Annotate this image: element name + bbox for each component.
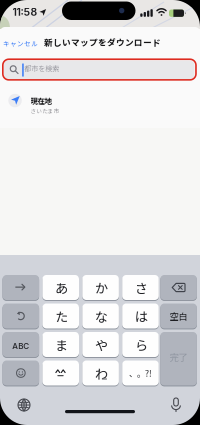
button[interactable]: 音声入力 bbox=[163, 393, 189, 417]
button[interactable]: か bbox=[82, 275, 119, 300]
button[interactable]: 現在地 さいたま市 bbox=[0, 0, 200, 128]
button[interactable]: ^_^ bbox=[42, 360, 79, 385]
staticText: ま bbox=[55, 335, 68, 354]
button[interactable]: 、。?! bbox=[122, 360, 159, 385]
staticText: 、。?! bbox=[129, 367, 152, 379]
staticText: 空白 bbox=[170, 309, 188, 322]
staticText: 新しいマップをダウンロード bbox=[44, 36, 161, 48]
button[interactable]: 絵文字 bbox=[2, 360, 39, 385]
staticText: は bbox=[135, 306, 148, 325]
button[interactable]: 次のキーボード bbox=[9, 393, 39, 417]
staticText: あ bbox=[55, 278, 68, 297]
button[interactable]: カーソルを移動 bbox=[2, 275, 39, 300]
staticText: 都市を検索 bbox=[24, 63, 59, 73]
button[interactable]: 完了 bbox=[160, 332, 197, 385]
staticText: ABC bbox=[12, 341, 29, 351]
button[interactable]: ま bbox=[42, 332, 79, 357]
button[interactable]: 都市を検索 bbox=[4, 60, 194, 79]
button[interactable]: ら bbox=[122, 332, 159, 357]
button[interactable]: な bbox=[82, 303, 119, 328]
button[interactable]: 空白 bbox=[160, 303, 197, 328]
staticText: 完了 bbox=[170, 350, 188, 363]
staticText: か bbox=[95, 278, 108, 297]
button[interactable]: キャンセル bbox=[3, 36, 63, 50]
staticText: や bbox=[95, 335, 108, 354]
button[interactable]: あ bbox=[42, 275, 79, 300]
staticText: わ bbox=[95, 363, 108, 382]
button[interactable]: さ bbox=[122, 275, 159, 300]
button[interactable]: は bbox=[122, 303, 159, 328]
button[interactable]: た bbox=[42, 303, 79, 328]
button[interactable]: ABC bbox=[2, 332, 39, 357]
button[interactable]: 削除 bbox=[160, 275, 197, 300]
staticText: た bbox=[55, 306, 68, 325]
staticText: な bbox=[95, 306, 108, 325]
button[interactable]: や bbox=[82, 332, 119, 357]
staticText: 現在地 bbox=[30, 95, 51, 106]
staticText: さ bbox=[135, 278, 148, 297]
staticText: キャンセル bbox=[3, 38, 38, 48]
staticText: ら bbox=[135, 335, 148, 354]
staticText: さいたま市 bbox=[30, 107, 59, 115]
staticText: 11:58 bbox=[12, 6, 37, 18]
button[interactable]: やり直す bbox=[2, 303, 39, 328]
button[interactable]: わ bbox=[82, 360, 119, 385]
